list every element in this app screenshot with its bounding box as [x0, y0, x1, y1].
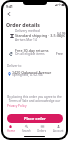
- button[interactable]: Place order: [7, 114, 63, 123]
- staticText: Home: [7, 129, 15, 133]
- button[interactable]: Privacy Policy: [7, 104, 27, 108]
- staticText: 9:41: [6, 4, 13, 9]
- staticText: Springfield, IL 62704: [12, 73, 43, 77]
- staticText: Order details: [6, 21, 40, 28]
- staticText: Deliver to: [7, 64, 22, 68]
- staticText: Delivery method: [15, 29, 40, 33]
- button[interactable]: Home: [3, 124, 18, 136]
- staticText: Orders: [37, 129, 47, 133]
- staticText: Free 30-day returns: [15, 48, 49, 53]
- button[interactable]: Back: [5, 10, 12, 17]
- staticText: Free: [56, 51, 63, 55]
- button[interactable]: Orders: [34, 124, 50, 136]
- staticText: Place order: [24, 116, 46, 121]
- staticText: By placing this order you agree to the T…: [5, 95, 64, 103]
- staticText: 1420 Oakwood Avenue: [12, 70, 52, 75]
- staticText: $4.99: [57, 31, 66, 35]
- staticText: On all eligible items: [15, 52, 45, 56]
- staticText: Arrives Mar 14: [15, 38, 37, 42]
- staticText: Search: [22, 129, 31, 133]
- button[interactable]: Search: [18, 124, 34, 136]
- staticText: Account: [53, 129, 64, 133]
- staticText: Standard shipping · 3-5 days: [15, 33, 65, 38]
- button[interactable]: Account: [50, 124, 66, 136]
